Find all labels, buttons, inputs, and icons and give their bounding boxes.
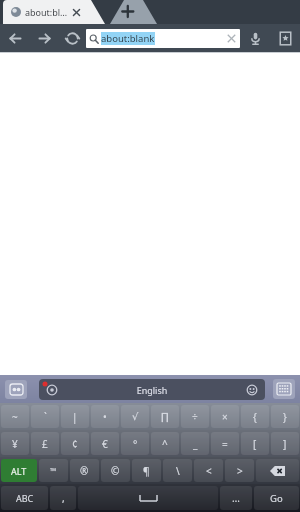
button[interactable]: Bookmarks: [270, 24, 300, 52]
button[interactable]: √: [121, 405, 149, 428]
staticText: £: [42, 437, 48, 451]
button[interactable]: ¥: [1, 432, 29, 455]
button[interactable]: Switch keyboard: [5, 380, 27, 399]
staticText: about:blank: [101, 32, 155, 45]
staticText: ^: [162, 437, 168, 451]
staticText: {: [253, 410, 257, 424]
staticText: =: [222, 437, 228, 451]
staticText: ®: [80, 464, 89, 478]
staticText: }: [283, 410, 287, 424]
button[interactable]: Close tab: [72, 8, 81, 17]
button[interactable]: ~: [1, 405, 29, 428]
button[interactable]: }: [271, 405, 299, 428]
staticText: ¶: [143, 464, 150, 478]
button[interactable]: about:blank: [86, 29, 240, 48]
button[interactable]: `: [31, 405, 59, 428]
button[interactable]: Forward: [30, 24, 58, 52]
button[interactable]: ®: [70, 459, 99, 482]
staticText: √: [132, 411, 139, 423]
staticText: ¢: [72, 437, 78, 451]
staticText: ]: [283, 437, 287, 451]
staticText: ×: [222, 410, 228, 424]
button[interactable]: _: [181, 432, 209, 455]
button[interactable]: £: [31, 432, 59, 455]
button[interactable]: Back: [0, 24, 30, 52]
button[interactable]: Floating keyboard: [273, 379, 295, 399]
button[interactable]: €: [91, 432, 119, 455]
staticText: Go: [270, 492, 283, 505]
button[interactable]: ABC: [1, 486, 48, 510]
staticText: `: [44, 410, 47, 424]
staticText: >: [237, 464, 243, 478]
button[interactable]: >: [225, 459, 254, 482]
staticText: €: [102, 437, 108, 451]
staticText: |: [72, 410, 78, 424]
staticText: English: [58, 384, 246, 396]
button[interactable]: Input settings: [39, 379, 265, 400]
button[interactable]: \: [163, 459, 192, 482]
button[interactable]: ÷: [181, 405, 209, 428]
button[interactable]: ×: [211, 405, 239, 428]
button[interactable]: °: [121, 432, 149, 455]
button[interactable]: ,: [50, 486, 76, 510]
button[interactable]: ^: [151, 432, 179, 455]
button[interactable]: …: [220, 486, 252, 510]
button[interactable]: ALT: [1, 459, 37, 482]
staticText: ©: [111, 464, 120, 478]
button[interactable]: [: [241, 432, 269, 455]
button[interactable]: <: [194, 459, 223, 482]
staticText: ¥: [12, 437, 18, 451]
staticText: •: [103, 410, 107, 424]
staticText: ~: [12, 410, 18, 424]
staticText: ™: [50, 465, 57, 476]
staticText: about:bl…: [25, 6, 68, 18]
button[interactable]: about:bl…: [3, 0, 105, 24]
button[interactable]: Reload: [58, 24, 86, 52]
button[interactable]: ¶: [132, 459, 161, 482]
button[interactable]: Voice search: [240, 24, 270, 52]
staticText: [: [253, 437, 257, 451]
button[interactable]: ∏: [151, 405, 179, 428]
button[interactable]: ™: [39, 459, 68, 482]
staticText: ABC: [16, 492, 34, 504]
staticText: ÷: [192, 410, 198, 424]
staticText: \: [176, 464, 180, 478]
button[interactable]: ©: [101, 459, 130, 482]
staticText: ALT: [11, 465, 27, 477]
button[interactable]: •: [91, 405, 119, 428]
staticText: …: [232, 491, 240, 505]
button[interactable]: |: [61, 405, 89, 428]
staticText: °: [133, 437, 138, 451]
staticText: <: [206, 464, 212, 478]
staticText: ∏: [161, 411, 169, 423]
button[interactable]: ]: [271, 432, 299, 455]
button[interactable]: Go: [254, 486, 299, 510]
button[interactable]: New tab: [99, 0, 147, 24]
button[interactable]: =: [211, 432, 239, 455]
button[interactable]: {: [241, 405, 269, 428]
staticText: ,: [62, 491, 65, 505]
button[interactable]: Backspace: [256, 459, 299, 482]
button[interactable]: ¢: [61, 432, 89, 455]
staticText: _: [193, 437, 198, 451]
other: Emoji: [246, 384, 258, 396]
other: Input settings: [46, 384, 58, 396]
button[interactable]: Space: [78, 486, 218, 510]
button[interactable]: Clear: [226, 33, 237, 44]
